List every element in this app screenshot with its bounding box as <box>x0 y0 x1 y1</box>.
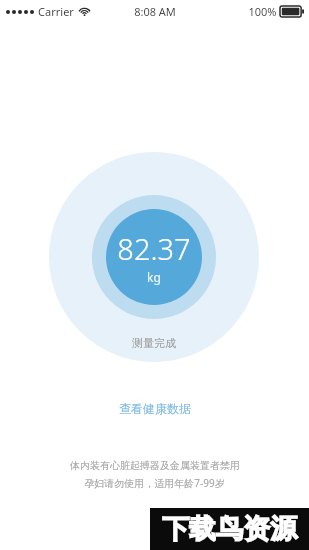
staticText: 查看健康数据 <box>119 401 191 416</box>
staticText: 孕妇请勿使用，适用年龄7-99岁 <box>84 476 225 490</box>
staticText: 测量完成 <box>132 336 176 350</box>
button[interactable]: 查看健康数据 <box>105 396 205 421</box>
staticText: 100% <box>248 4 277 19</box>
staticText: kg <box>147 269 161 285</box>
staticText: 82.37 <box>117 229 191 268</box>
staticText: 体内装有心脏起搏器及金属装置者禁用 <box>70 459 240 472</box>
staticText: Carrier <box>38 4 74 19</box>
staticText: 下载鸟资源 <box>162 512 297 546</box>
staticText: 8:08 AM <box>134 4 176 19</box>
